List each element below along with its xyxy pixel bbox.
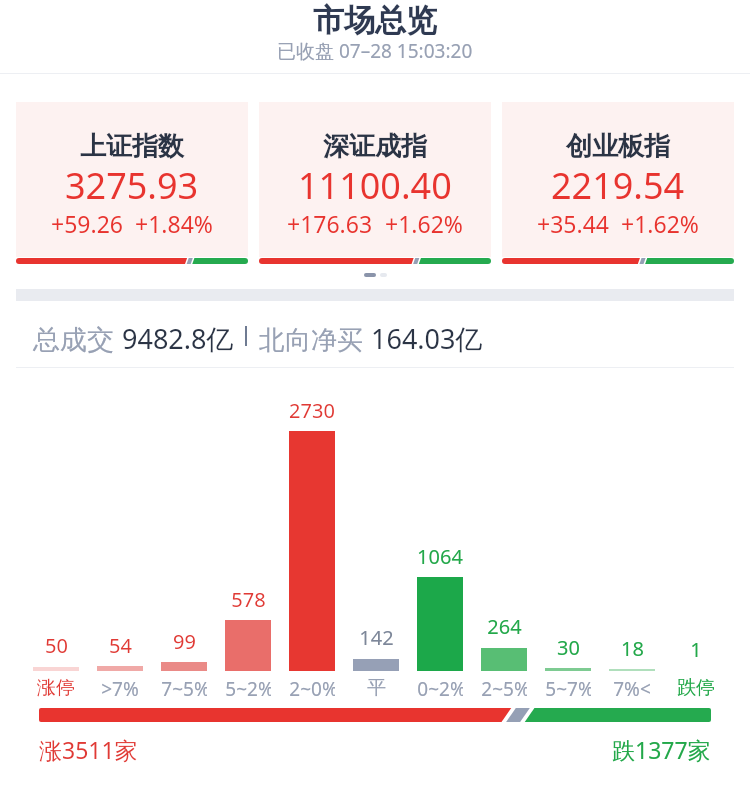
staticText: 1064	[417, 543, 463, 570]
button[interactable]: 5~2%	[225, 676, 271, 702]
staticText: 跌1377家	[612, 734, 711, 765]
staticText: 涨停	[37, 676, 75, 700]
staticText: 深证成指	[323, 130, 427, 163]
staticText: 164.03亿	[371, 320, 483, 357]
staticText: 创业板指	[566, 130, 670, 163]
staticText: 5~2%	[225, 676, 271, 702]
staticText: +1.84%	[135, 208, 213, 239]
staticText: >7%	[101, 676, 139, 702]
staticText: 平	[367, 676, 386, 700]
staticText: +176.63	[287, 208, 373, 239]
staticText: 2730	[289, 397, 335, 424]
staticText: 99	[173, 628, 196, 655]
staticText: +35.44	[537, 208, 609, 239]
button[interactable]: 涨停	[33, 676, 79, 700]
staticText: 9482.8亿	[122, 320, 234, 357]
staticText: 已收盘 07–28 15:03:20	[277, 38, 473, 64]
button[interactable]: 0~2%	[417, 676, 463, 702]
button[interactable]: 2~5%	[481, 676, 527, 702]
button[interactable]: 7~5%	[161, 676, 207, 702]
staticText: 1	[690, 636, 702, 663]
staticText: 涨3511家	[39, 734, 138, 765]
staticText: 578	[231, 586, 266, 613]
button[interactable]: 创业板指	[502, 102, 734, 264]
staticText: 0~2%	[417, 676, 463, 702]
staticText: 上证指数	[80, 130, 184, 163]
staticText: 18	[621, 635, 644, 662]
staticText: 30	[557, 634, 580, 661]
staticText: 50	[45, 632, 68, 659]
staticText: +59.26	[51, 208, 123, 239]
button[interactable]: 5~7%	[545, 676, 591, 702]
button[interactable]: 平	[353, 676, 399, 700]
button[interactable]: >7%	[97, 676, 143, 702]
button[interactable]: 2~0%	[289, 676, 335, 702]
staticText: +1.62%	[621, 208, 699, 239]
staticText: 264	[487, 613, 522, 640]
staticText: 2~5%	[481, 676, 527, 702]
staticText: 142	[359, 624, 394, 651]
staticText: 总成交	[33, 323, 114, 357]
staticText: 跌停	[677, 676, 715, 700]
button[interactable]: 深证成指	[259, 102, 491, 264]
staticText: 7~5%	[161, 676, 207, 702]
staticText: 3275.93	[65, 161, 199, 210]
button[interactable]: 跌停	[673, 676, 719, 700]
staticText: 市场总览	[313, 1, 437, 40]
staticText: 5~7%	[545, 676, 591, 702]
staticText: +1.62%	[385, 208, 463, 239]
staticText: 11100.40	[298, 161, 452, 210]
staticText: 2~0%	[289, 676, 335, 702]
staticText: 54	[109, 632, 132, 659]
button[interactable]: 7%<	[609, 676, 655, 702]
staticText: 北向净买	[259, 324, 363, 357]
staticText: 7%<	[613, 676, 651, 702]
button[interactable]: 上证指数	[16, 102, 248, 264]
staticText: 2219.54	[551, 161, 685, 210]
button[interactable]: 总成交	[33, 320, 483, 357]
